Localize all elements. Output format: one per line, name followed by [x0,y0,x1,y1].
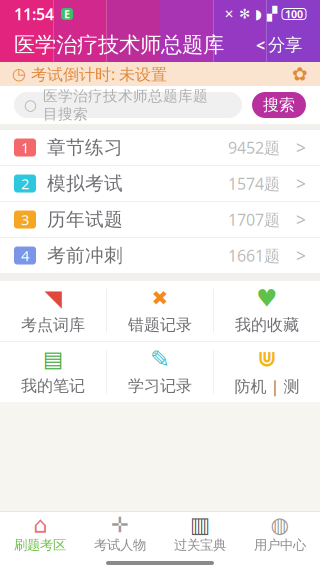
staticText: ◷ [12,65,26,83]
button[interactable]: ▤ [0,342,106,402]
button[interactable]: ✛ [80,512,160,556]
staticText: ✻ [239,6,250,21]
staticText: 过关宝典 [174,537,226,553]
staticText: 9452题 [228,137,280,158]
staticText: ✛ [111,513,129,537]
staticText: 11:54 [14,3,54,25]
staticText: > [296,172,306,195]
staticText: 医学治疗技术师总题库 [14,32,224,58]
staticText: ⋓ [257,345,276,371]
staticText: < [256,34,265,56]
staticText: 1574题 [228,173,280,194]
staticText: ◗ [255,6,262,21]
staticText: 1707题 [228,209,280,230]
staticText: 错题记录 [128,315,192,335]
staticText: ✿ [292,63,308,85]
button[interactable]: ◷ [0,62,320,86]
button[interactable]: ⋓ [214,342,320,402]
staticText: > [296,208,306,231]
staticText: ✖ [151,287,168,309]
staticText: 考试倒计时: 未设置 [31,63,167,85]
button[interactable]: ♥ [214,281,320,341]
staticText: 考点词库 [21,315,85,335]
button[interactable]: 2 [0,166,320,202]
staticText: 考前冲刺 [47,244,123,267]
button[interactable]: ▥ [160,512,240,556]
staticText: 医学治疗技术师总题库题目搜索 [43,87,208,123]
staticText: ▞ [267,6,277,21]
button[interactable]: ⌂ [0,512,80,556]
staticText: 2 [21,174,29,193]
button[interactable]: 1 [0,130,320,166]
staticText: 用户中心 [254,537,306,553]
staticText: ◥ [44,285,61,311]
staticText: 章节练习 [47,136,123,159]
staticText: 历年试题 [47,208,123,231]
button[interactable]: ◥ [0,281,106,341]
staticText: > [296,244,306,267]
button[interactable]: ○ [14,92,242,118]
staticText: ♥ [256,285,278,312]
staticText: 100 [285,7,303,21]
staticText: 1661题 [228,245,280,266]
button[interactable]: ✎ [107,342,213,402]
staticText: 搜索 [263,95,295,115]
staticText: 刷题考区 [14,537,66,553]
staticText: 4 [21,246,29,265]
staticText: 模拟考试 [47,172,123,195]
button[interactable]: ◍ [240,512,320,556]
staticText: 我的收藏 [235,315,299,335]
staticText: E [64,7,70,21]
staticText: 分享 [268,34,302,56]
staticText: ✎ [150,346,170,373]
staticText: 防机 | 测 [234,375,299,397]
button[interactable]: ✖ [107,281,213,341]
staticText: ✕ [224,7,234,21]
staticText: 我的笔记 [21,376,85,396]
staticText: ◍ [270,513,289,537]
staticText: 考试人物 [94,537,146,553]
staticText: > [296,136,306,159]
staticText: 3 [21,210,29,229]
button[interactable]: 4 [0,238,320,273]
button[interactable]: < [252,28,306,62]
button[interactable]: 3 [0,202,320,238]
staticText: ▤ [43,347,63,371]
staticText: ▥ [190,513,210,537]
button[interactable]: 搜索 [252,92,306,118]
staticText: 1 [21,138,29,157]
staticText: ⌂ [33,512,47,538]
staticText: ○ [24,97,37,113]
staticText: 学习记录 [128,376,192,396]
